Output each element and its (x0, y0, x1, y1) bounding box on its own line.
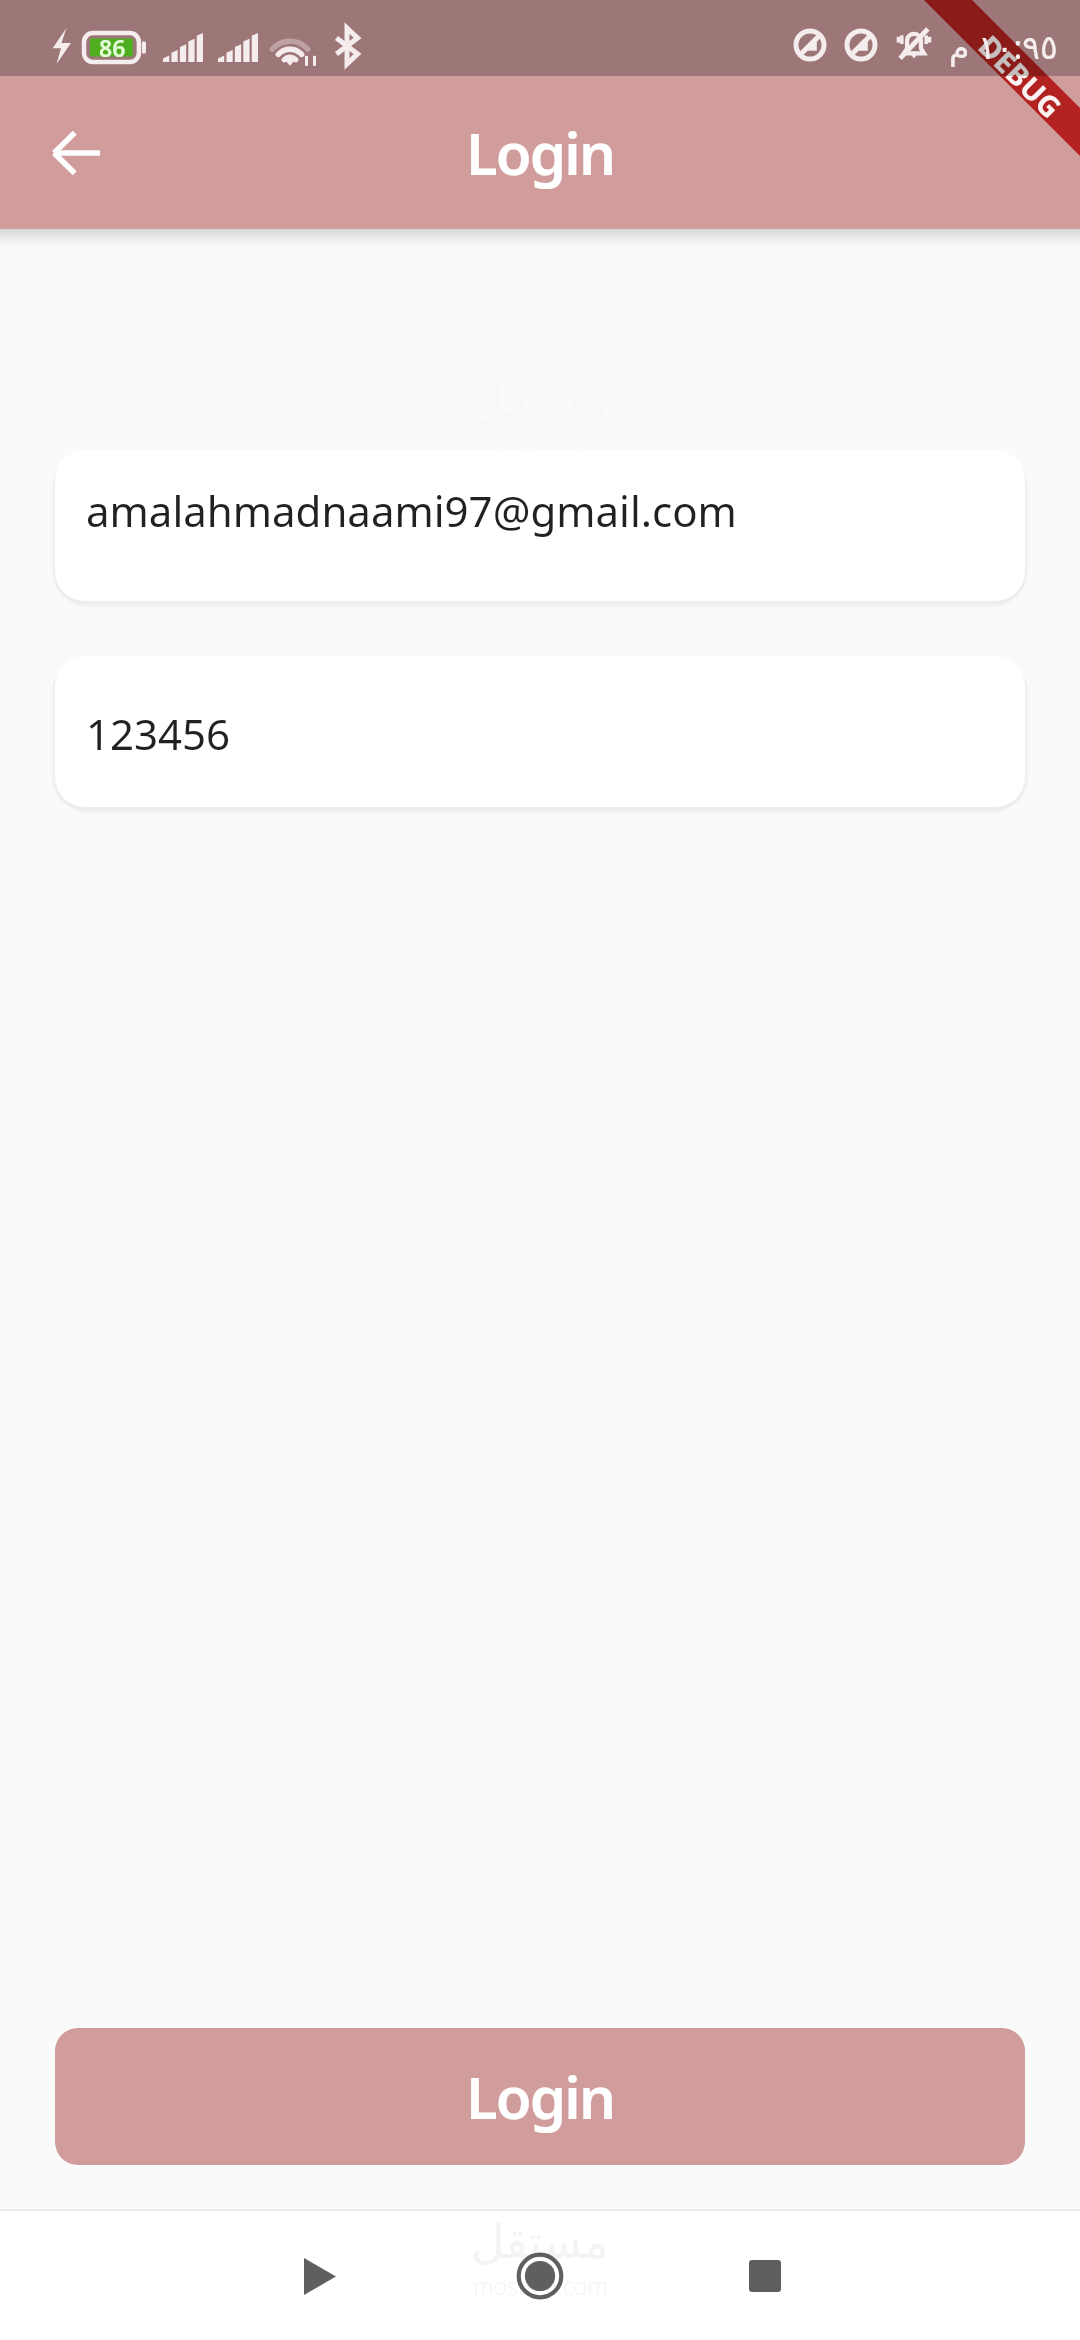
button[interactable]: Back (30, 106, 124, 200)
button[interactable]: Recents (720, 2231, 810, 2321)
staticText: مستقل (471, 2215, 609, 2269)
button[interactable]: Back (275, 2231, 365, 2321)
staticText: amalahmadnaami97@gmail.com (86, 482, 737, 539)
staticText: ١٠:٩٥ م (949, 24, 1058, 69)
staticText: mostaql.com (473, 2270, 608, 2301)
button[interactable]: amalahmadnaami97@gmail.com (55, 450, 1025, 601)
button[interactable]: Login (55, 2028, 1025, 2165)
staticText: 123456 (86, 705, 231, 762)
staticText: DEBUG (974, 26, 1071, 123)
staticText: Login (466, 113, 615, 192)
button[interactable]: Home (495, 2231, 585, 2321)
staticText: 86 (99, 32, 126, 63)
button[interactable]: 123456 (55, 656, 1025, 807)
staticText: Login (466, 2057, 615, 2136)
